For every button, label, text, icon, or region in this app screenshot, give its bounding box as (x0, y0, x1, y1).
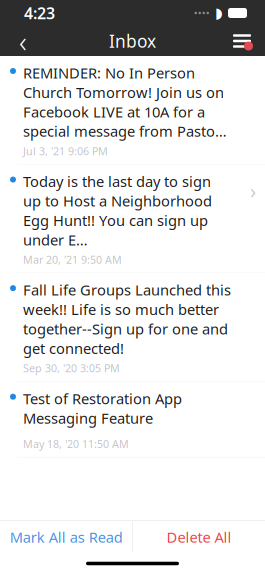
staticText: May 18, '20 11:50 AM (23, 437, 129, 451)
button[interactable]: Fall Life Groups Launched this week!! Li… (0, 273, 265, 382)
button[interactable]: Back (6, 26, 40, 56)
button[interactable]: Today is the last day to sign up to Host… (0, 165, 265, 273)
button[interactable]: Mark All as Read (0, 521, 132, 553)
staticText: Sep 30, '20 3:05 PM (23, 361, 120, 375)
staticText: › (250, 178, 256, 204)
staticText: Delete All (166, 527, 231, 547)
staticText: Mark All as Read (10, 527, 123, 547)
staticText: ‹ (19, 21, 27, 60)
button[interactable]: REMINDER: No In Person Church Tomorrow! … (0, 56, 265, 165)
button[interactable]: Menu (225, 26, 259, 56)
staticText: ◗ (215, 5, 223, 21)
staticText: Today is the last day to sign up to Host… (23, 172, 212, 249)
staticText: REMINDER: No In Person Church Tomorrow! … (23, 63, 227, 141)
button[interactable]: Delete All (133, 521, 265, 553)
staticText: Mar 20, '21 9:50 AM (23, 252, 122, 267)
staticText: Jul 3, '21 9:06 PM (23, 144, 108, 158)
staticText: Test of Restoration App Messaging Featur… (23, 389, 182, 428)
staticText: Inbox (109, 29, 156, 52)
button[interactable]: Test of Restoration App Messaging Featur… (0, 382, 265, 457)
staticText: 4:23 (24, 2, 55, 24)
staticText: Fall Life Groups Launched this week!! Li… (23, 280, 231, 358)
